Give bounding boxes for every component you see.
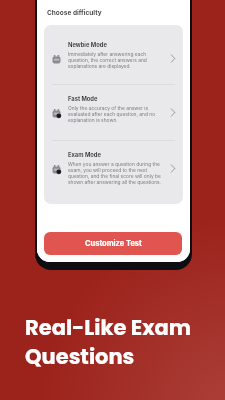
button[interactable]: Fast Mode [44, 85, 183, 140]
staticText: Fast Mode [68, 95, 98, 102]
button[interactable]: Newbie Mode [44, 25, 183, 84]
staticText: When you answer a question during the ex… [68, 161, 166, 185]
staticText: Only the accuracy of the answer is evalu… [68, 105, 166, 123]
button[interactable]: Customize Test [44, 232, 182, 255]
other: Open [170, 164, 176, 173]
other: Open [170, 108, 176, 117]
staticText: Choose difficulty [47, 9, 102, 17]
button[interactable]: Exam Mode [44, 141, 183, 204]
staticText: Customize Test [85, 239, 142, 248]
staticText: Newbie Mode [68, 41, 107, 48]
staticText: Questions [25, 342, 135, 371]
staticText: Real-Like Exam [25, 313, 192, 342]
other: Open [170, 54, 176, 63]
staticText: Exam Mode [68, 151, 101, 158]
staticText: Immediately after answering each questio… [68, 51, 166, 69]
